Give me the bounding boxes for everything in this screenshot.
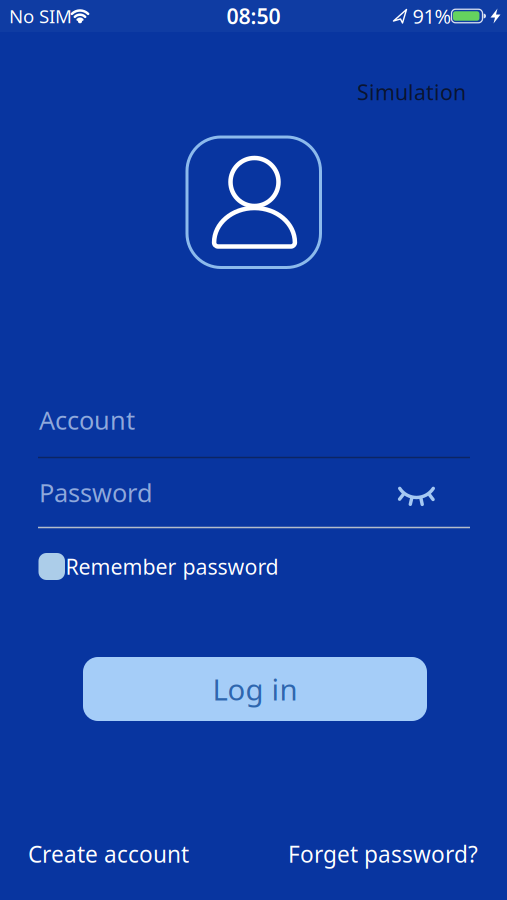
staticText: 08:50 [226,2,280,30]
staticText: No SIM [9,4,72,28]
staticText: Password [39,476,153,509]
button[interactable]: Account [0,396,507,464]
staticText: Account [39,403,135,437]
staticText: Simulation [357,78,466,106]
button[interactable]: Show password [391,474,441,514]
staticText: 91% [412,3,451,29]
button[interactable]: Create account [0,839,189,869]
button[interactable]: Forget password? [288,839,507,869]
staticText: Create account [28,839,189,869]
staticText: Log in [212,669,297,708]
button[interactable]: Password [0,468,507,536]
staticText: Remember password [65,552,278,581]
button[interactable]: Remember password [0,552,507,581]
button[interactable]: Log in [83,657,427,721]
staticText: Forget password? [288,839,478,869]
